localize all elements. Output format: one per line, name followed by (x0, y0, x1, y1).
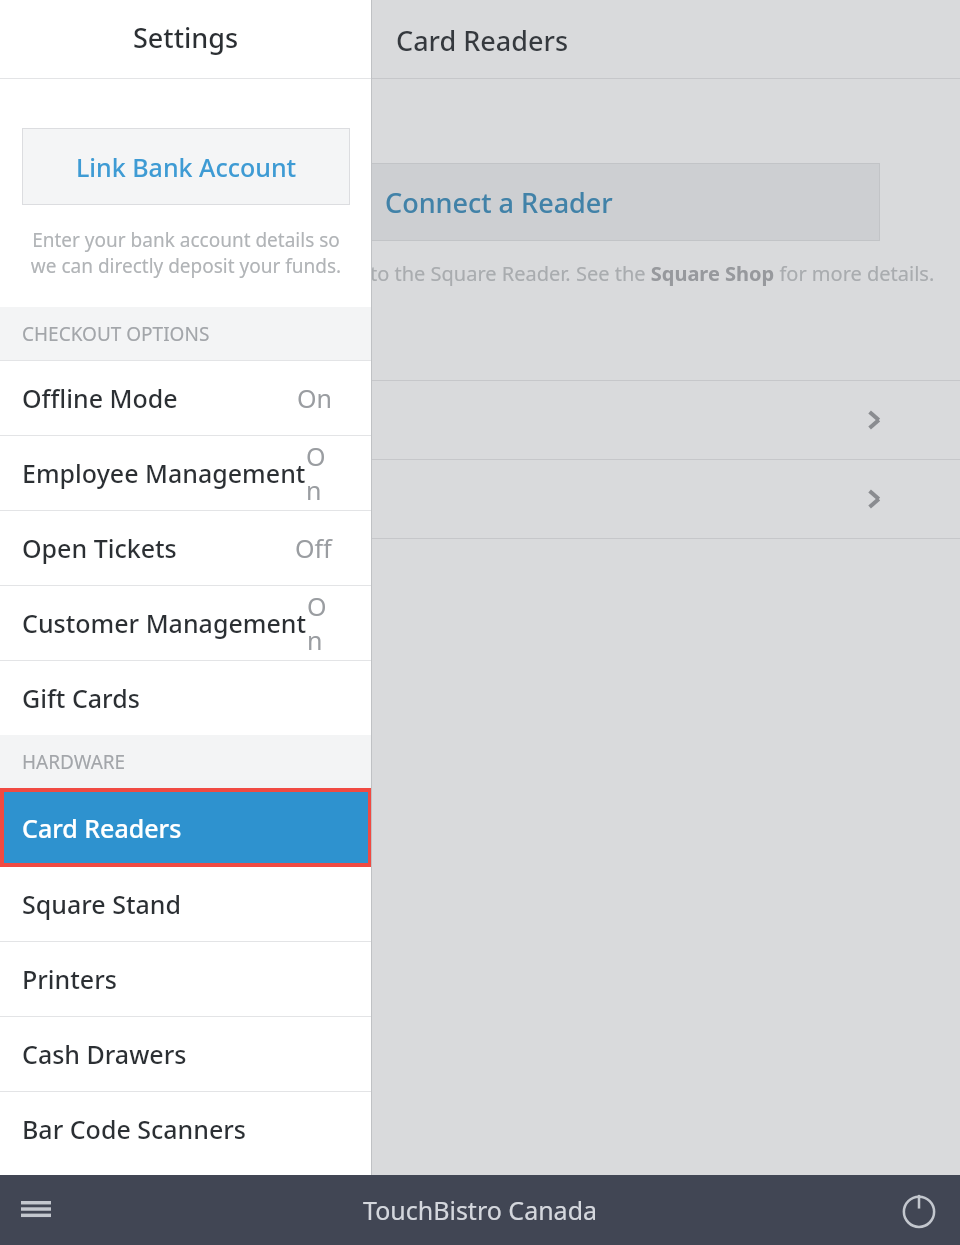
button[interactable]: Menu (12, 1186, 60, 1234)
staticText: Offline Mode (22, 381, 178, 415)
button[interactable]: Link Bank Account (22, 128, 350, 205)
button[interactable]: Open Tickets (0, 511, 372, 585)
staticText: HARDWARE (22, 749, 126, 775)
staticText: Card Readers (22, 811, 182, 845)
staticText: Bar Code Scanners (22, 1112, 246, 1146)
staticText: Link Bank Account (76, 150, 297, 184)
staticText: Gift Cards (22, 681, 140, 715)
staticText: Printers (22, 962, 117, 996)
staticText: Customer Management (22, 606, 307, 640)
button[interactable]: Offline Mode (0, 361, 372, 435)
button[interactable]: Power (892, 1183, 946, 1237)
staticText: Settings (133, 19, 239, 56)
staticText: Card Readers (396, 22, 569, 59)
button[interactable]: Employee Management (0, 436, 372, 510)
button[interactable]: Customer Management (0, 586, 372, 660)
button[interactable]: Connect a Reader (0, 163, 880, 241)
button[interactable]: Bar Code Scanners (0, 1092, 372, 1166)
button[interactable]: Square Stand (0, 867, 372, 941)
staticText: to the Square Reader. See the Square Sho… (370, 260, 935, 287)
staticText: Square Stand (22, 887, 181, 921)
staticText: Connect a Reader (385, 184, 613, 221)
staticText: Enter your bank account details so we ca… (24, 227, 348, 279)
staticText: Cash Drawers (22, 1037, 187, 1071)
staticText: On (297, 381, 332, 415)
staticText: Employee Management (22, 456, 306, 490)
staticText: Open Tickets (22, 531, 177, 565)
staticText: CHECKOUT OPTIONS (22, 321, 210, 347)
staticText: TouchBistro Canada (363, 1193, 598, 1227)
staticText: On (306, 439, 332, 507)
staticText: Off (295, 531, 332, 565)
button[interactable]: Card Readers (0, 788, 372, 867)
button[interactable]: Printers (0, 942, 372, 1016)
button[interactable]: Gift Cards (0, 661, 372, 735)
button[interactable]: Cash Drawers (0, 1017, 372, 1091)
button[interactable] (0, 381, 960, 459)
staticText: On (307, 589, 332, 657)
button[interactable] (0, 460, 960, 538)
